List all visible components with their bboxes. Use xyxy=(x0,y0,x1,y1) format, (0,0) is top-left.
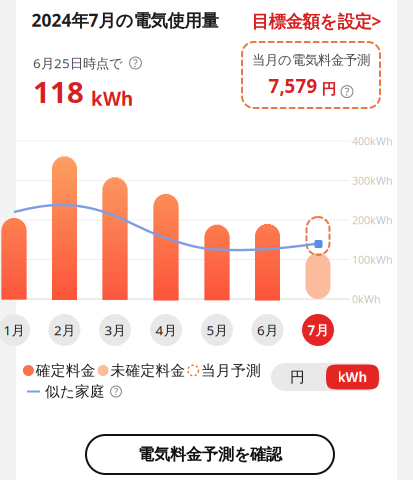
button[interactable]: 7月 xyxy=(302,314,334,346)
staticText: 当月の電気料金予測 xyxy=(252,52,370,68)
staticText: 2024年7月の電気使用量 xyxy=(31,8,218,31)
button[interactable]: kWh xyxy=(326,364,379,389)
staticText: 円 xyxy=(290,368,305,386)
staticText: 1月 xyxy=(3,321,24,339)
staticText: 当月予測 xyxy=(201,361,261,379)
staticText: ? xyxy=(344,84,349,99)
staticText: 目標金額を設定> xyxy=(251,9,381,32)
staticText: kWh xyxy=(337,368,367,386)
staticText: kWh xyxy=(91,86,133,111)
button[interactable]: 4月 xyxy=(150,314,182,346)
staticText: 7月 xyxy=(307,321,328,339)
staticText: ? xyxy=(114,385,118,398)
staticText: 300kWh xyxy=(352,173,393,188)
button[interactable]: 6月 xyxy=(251,314,283,346)
staticText: 400kWh xyxy=(352,134,393,148)
button[interactable]: 電気料金予測を確認 xyxy=(85,434,335,475)
staticText: 円 xyxy=(321,80,336,98)
button[interactable]: 5月 xyxy=(201,314,233,346)
staticText: 4月 xyxy=(155,321,176,339)
staticText: 2月 xyxy=(54,321,75,339)
button[interactable]: 2月 xyxy=(48,314,80,346)
staticText: 200kWh xyxy=(352,213,393,227)
staticText: 7,579 xyxy=(268,73,317,98)
staticText: 未確定料金 xyxy=(110,361,185,379)
staticText: 電気料金予測を確認 xyxy=(138,445,282,464)
staticText: 3月 xyxy=(104,321,125,339)
staticText: 5月 xyxy=(206,321,227,339)
button[interactable]: 円 xyxy=(271,363,324,391)
staticText: 6月25日時点で xyxy=(33,54,123,72)
staticText: 0kWh xyxy=(352,292,381,306)
staticText: ? xyxy=(133,56,138,70)
staticText: 118 xyxy=(33,72,84,111)
staticText: 100kWh xyxy=(352,252,393,267)
button[interactable]: 3月 xyxy=(99,314,131,346)
staticText: 6月 xyxy=(257,321,278,339)
staticText: 似た家庭 xyxy=(45,382,105,400)
staticText: 確定料金 xyxy=(36,361,96,379)
button[interactable]: 1月 xyxy=(0,314,30,346)
button[interactable]: 目標金額を設定> xyxy=(251,9,389,32)
